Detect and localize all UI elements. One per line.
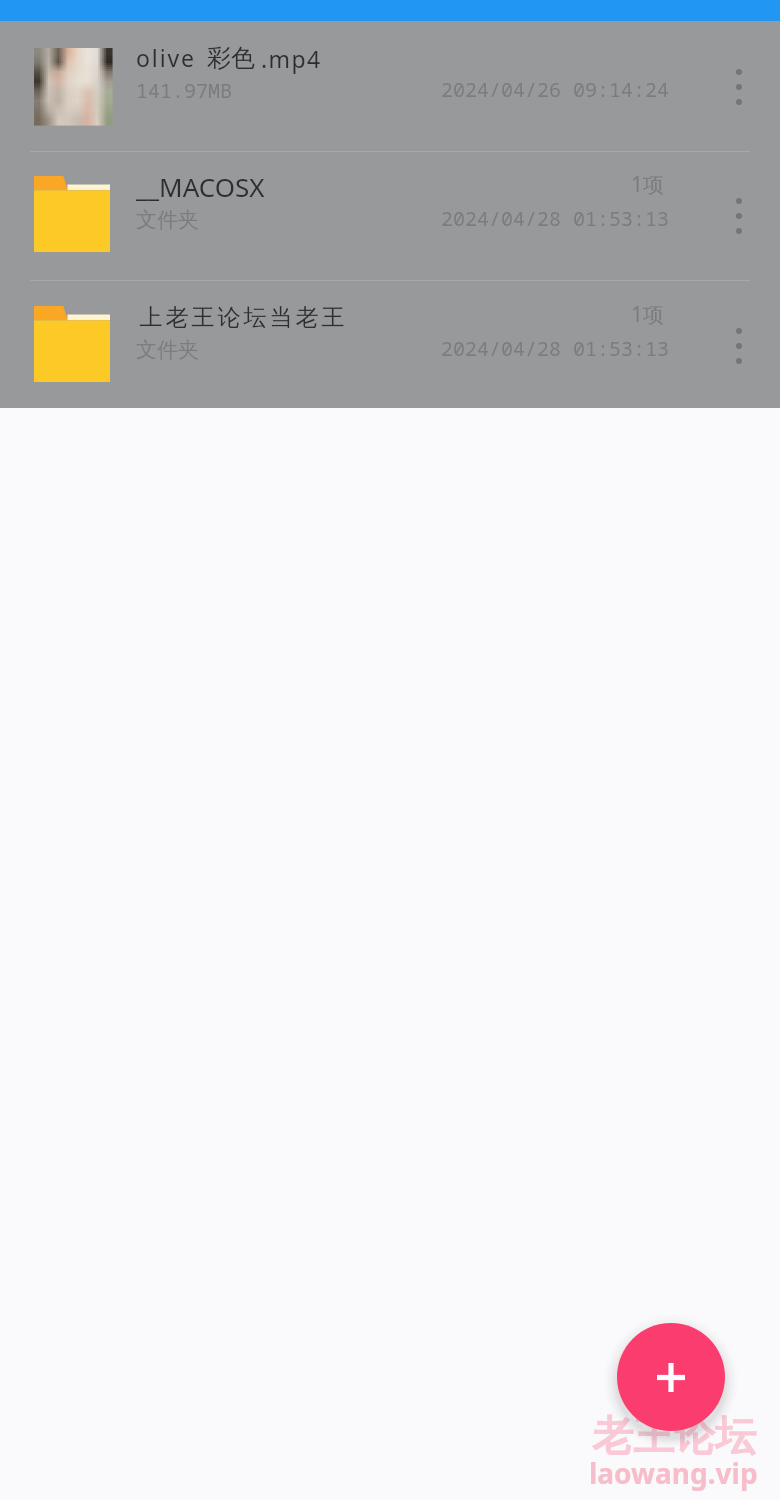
staticText: 1项 (631, 300, 665, 329)
button[interactable]: More options (696, 283, 780, 409)
button[interactable]: olive (0, 20, 780, 149)
button[interactable]: More options (696, 153, 780, 279)
staticText: 2024/04/28 01:53:13 (441, 335, 669, 362)
button[interactable]: Add (617, 1323, 725, 1431)
staticText: 141.97MB (136, 77, 232, 104)
button[interactable]: More options (696, 24, 780, 150)
staticText: 1项 (631, 170, 665, 199)
staticText: 文件夹 (136, 207, 199, 233)
button[interactable]: __MACOSX (0, 149, 780, 278)
staticText: 文件夹 (136, 337, 199, 363)
staticText: 彩色 (207, 43, 255, 73)
staticText: .mp4 (261, 43, 322, 74)
staticText: 上老王论坛当老王 (138, 303, 346, 332)
staticText: __MACOSX (136, 169, 265, 204)
staticText: 2024/04/26 09:14:24 (441, 76, 669, 103)
button[interactable]: 上老王论坛当老王 (0, 279, 780, 408)
staticText: laowang.vip (589, 1454, 758, 1492)
staticText: 老王论坛 (592, 1411, 756, 1463)
staticText: 2024/04/28 01:53:13 (441, 205, 669, 232)
staticText: olive (136, 42, 196, 73)
